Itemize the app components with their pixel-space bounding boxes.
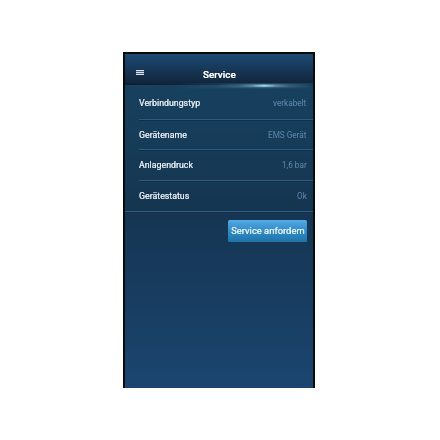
staticText: Service anfordern bbox=[231, 225, 305, 236]
button[interactable]: Verbindungstyp bbox=[125, 86, 313, 119]
button[interactable]: Gerätename bbox=[125, 120, 313, 150]
button[interactable]: Anlagendruck bbox=[125, 150, 313, 180]
staticText: verkabelt bbox=[273, 98, 307, 108]
staticText: Gerätestatus bbox=[139, 191, 190, 201]
staticText: Verbindungstyp bbox=[139, 98, 201, 108]
staticText: Gerätename bbox=[139, 130, 187, 140]
staticText: 1,6 bar bbox=[282, 160, 307, 170]
button[interactable]: Gerätestatus bbox=[125, 181, 313, 211]
staticText: Ok bbox=[297, 191, 307, 201]
staticText: Anlagendruck bbox=[139, 160, 193, 170]
button[interactable]: Menu bbox=[131, 63, 149, 81]
staticText: Service bbox=[203, 69, 236, 81]
button[interactable]: Service anfordern bbox=[228, 220, 307, 242]
staticText: EMS Gerät bbox=[268, 130, 307, 140]
